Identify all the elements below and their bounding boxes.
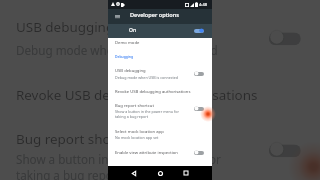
staticText: USB debugging [16, 20, 115, 39]
button[interactable] [108, 125, 212, 144]
button[interactable] [108, 38, 212, 48]
staticText: Debugging [115, 54, 134, 59]
button[interactable] [0, 7, 320, 68]
staticText: Enable view attribute inspection [115, 150, 178, 156]
button[interactable]: Recent apps [179, 166, 193, 180]
staticText: Debug mode when USB is connected [115, 75, 179, 80]
staticText: Demo mode [115, 40, 140, 46]
button[interactable] [0, 122, 320, 180]
button[interactable]: Toggle [269, 29, 301, 45]
staticText: taking a bug report [115, 114, 149, 119]
staticText: Show a button in the power menu for [115, 109, 179, 114]
button[interactable]: Toggle [269, 141, 301, 157]
button[interactable]: Home [153, 166, 167, 180]
staticText: On [129, 27, 137, 34]
staticText: Revoke USB debugging authorisations [16, 87, 259, 106]
button[interactable] [108, 24, 212, 38]
button[interactable]: Back [127, 166, 141, 180]
button[interactable]: Toggle [194, 28, 204, 33]
staticText: Debug mode when USB is connected [16, 42, 221, 58]
button[interactable] [0, 74, 320, 116]
button[interactable]: Toggle [194, 71, 204, 76]
staticText: Select mock location app [115, 129, 164, 135]
button[interactable]: Toggle [194, 106, 204, 111]
button[interactable] [108, 64, 212, 83]
staticText: taking a bug report [16, 167, 125, 180]
staticText: 4:48 [199, 2, 207, 7]
staticText: Bug report shortcut [115, 103, 154, 109]
button[interactable] [108, 100, 212, 122]
button[interactable] [108, 85, 212, 98]
staticText: No mock location app set [115, 135, 159, 140]
button[interactable]: Open navigation drawer [110, 9, 124, 24]
staticText: Bug report shortcut [16, 132, 141, 151]
staticText: Show a button in the power menu for [16, 151, 221, 167]
staticText: USB debugging [115, 68, 146, 74]
button[interactable] [108, 146, 212, 162]
staticText: Revoke USB debugging authorisations [115, 89, 191, 95]
staticText: Developer options [130, 11, 179, 19]
button[interactable]: Toggle [194, 150, 204, 155]
